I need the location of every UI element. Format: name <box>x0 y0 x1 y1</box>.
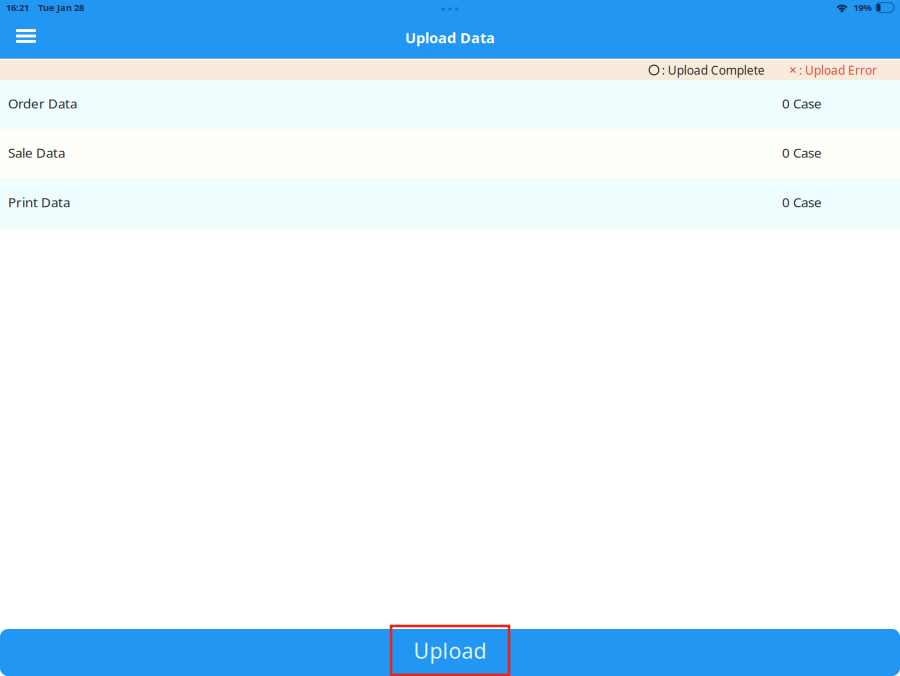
staticText: Upload <box>413 636 486 665</box>
staticText: Print Data <box>8 193 70 211</box>
staticText: Order Data <box>8 94 77 112</box>
staticText: 16:21 <box>6 1 29 14</box>
staticText: Upload Data <box>405 28 495 47</box>
button[interactable]: Order Data <box>0 80 900 129</box>
staticText: : Upload Error <box>796 62 877 78</box>
staticText: 0 Case <box>782 144 822 161</box>
button[interactable]: Upload <box>0 629 900 676</box>
button[interactable]: Menu <box>4 19 48 58</box>
button[interactable]: Sale Data <box>0 129 900 179</box>
staticText: : Upload Complete <box>659 62 765 78</box>
staticText: Tue Jan 28 <box>38 1 84 14</box>
staticText: 0 Case <box>782 193 822 211</box>
staticText: 19% <box>853 1 871 14</box>
button[interactable]: Print Data <box>0 179 900 228</box>
staticText: Sale Data <box>8 144 65 161</box>
staticText: 0 Case <box>782 94 822 112</box>
